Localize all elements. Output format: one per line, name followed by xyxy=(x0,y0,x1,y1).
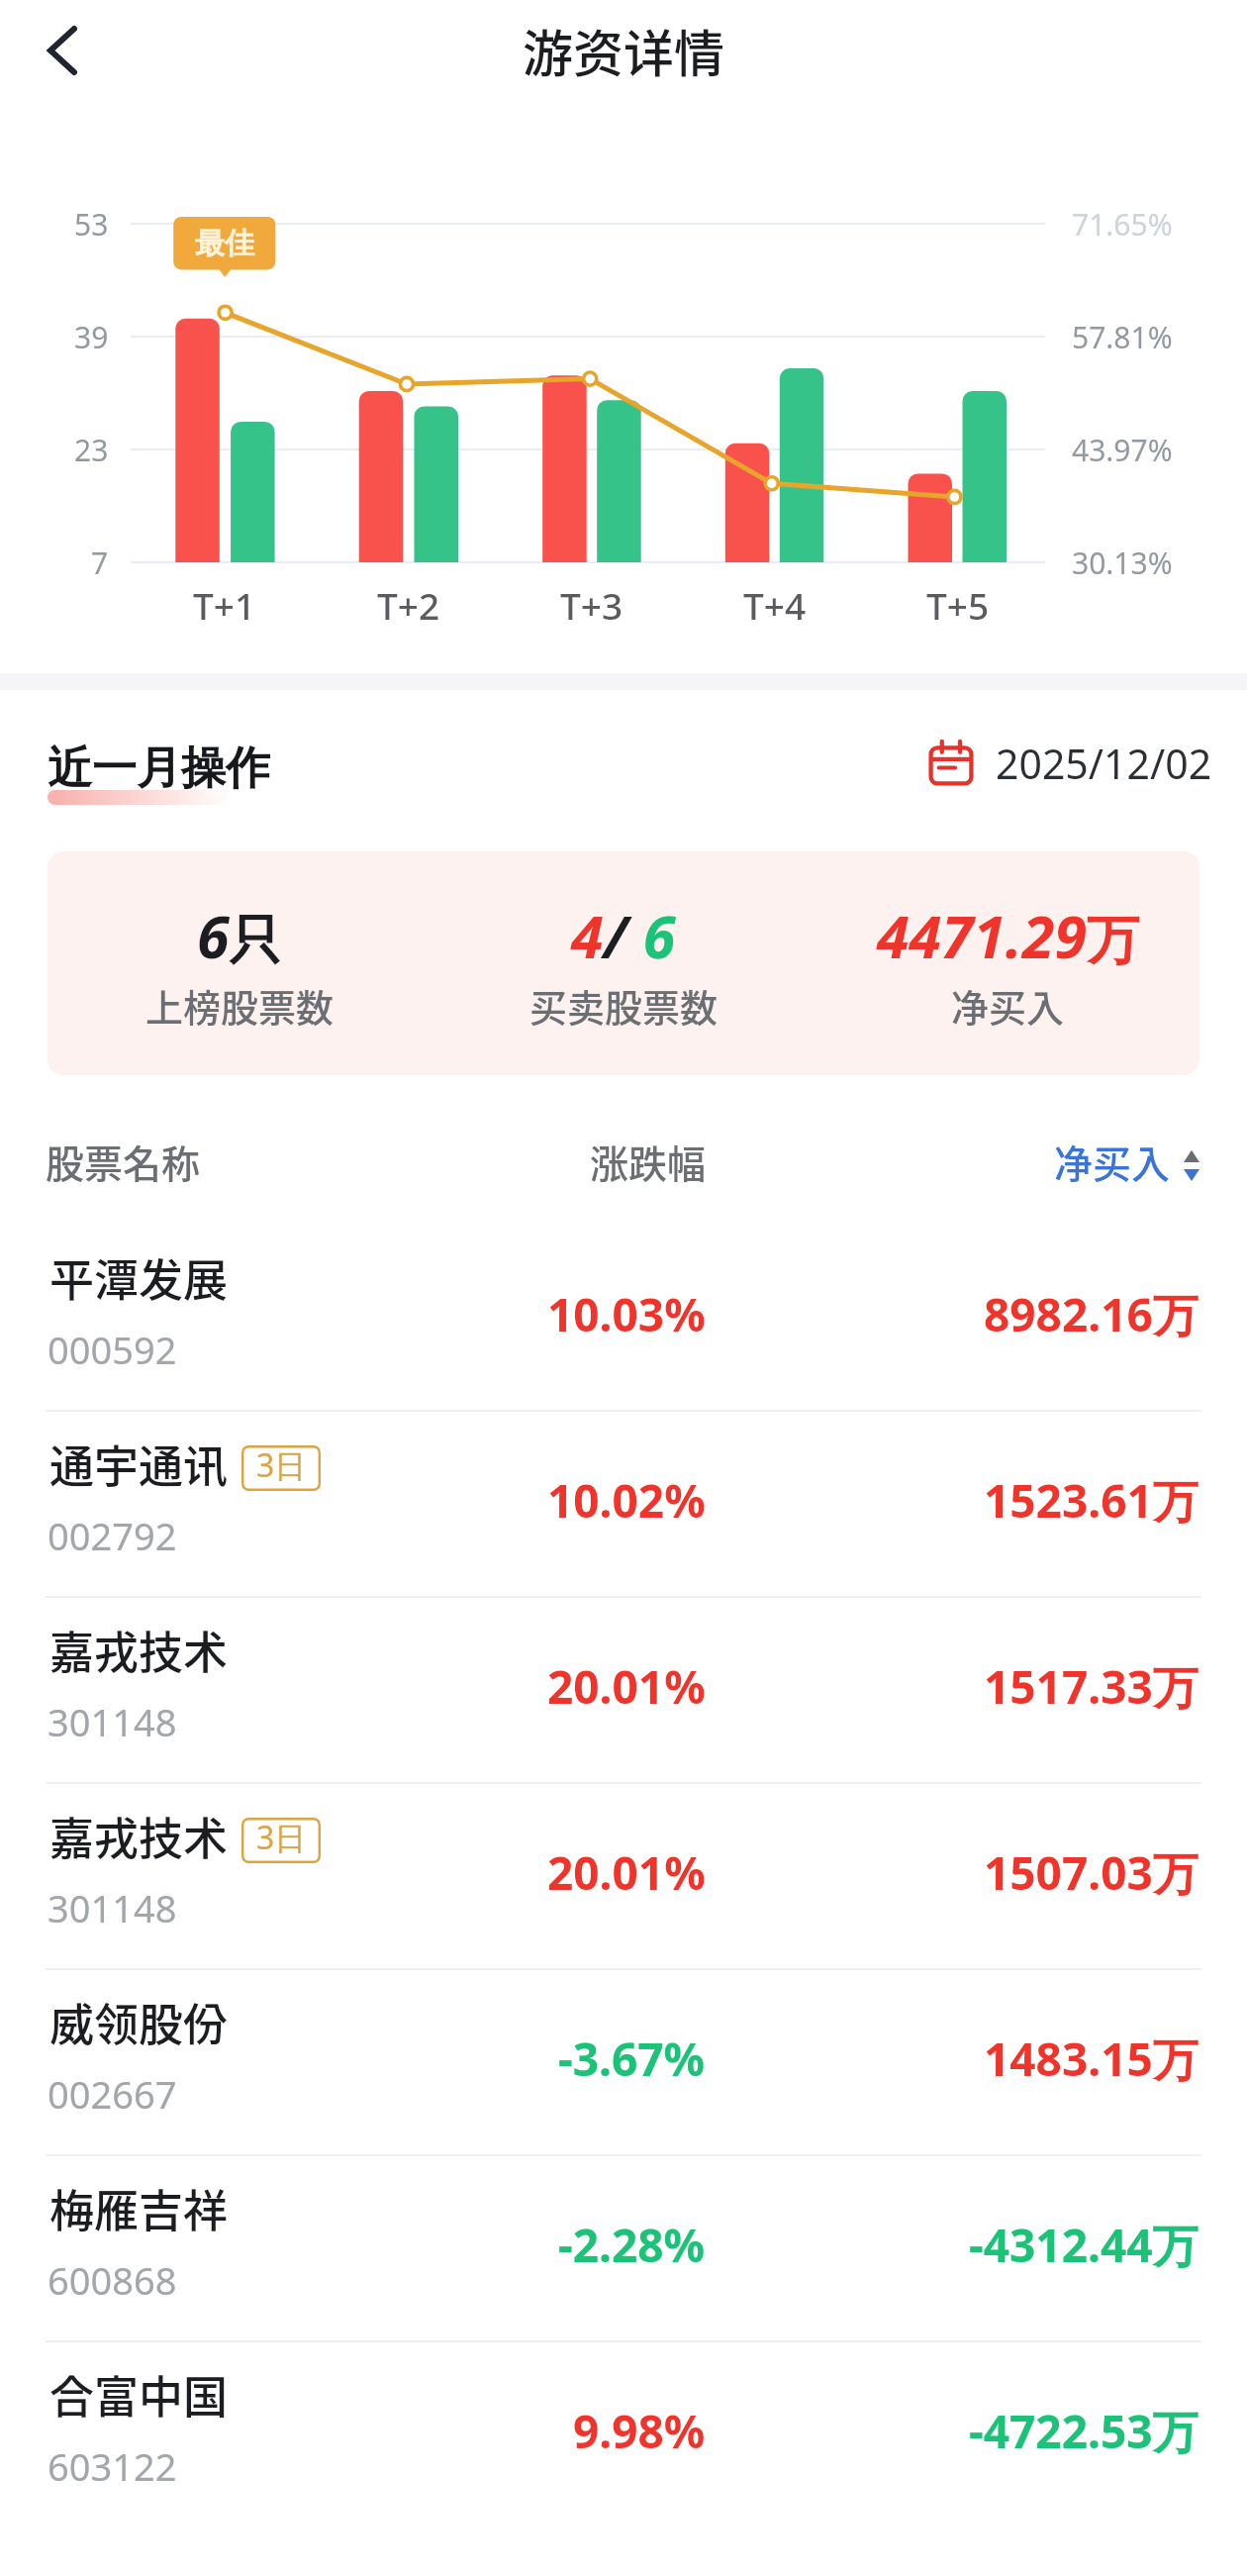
staticText: 通宇通讯 xyxy=(49,1432,229,1496)
button[interactable]: 平潭发展 xyxy=(0,1224,1247,1410)
button[interactable]: 威领股份 xyxy=(0,1968,1247,2154)
button[interactable]: 嘉戎技术 xyxy=(0,1782,1247,1968)
staticText: 威领股份 xyxy=(49,1990,229,2054)
staticText: 002792 xyxy=(48,1510,177,1561)
staticText: 603122 xyxy=(48,2440,177,2492)
staticText: 43.97% xyxy=(1072,430,1173,470)
staticText: T+2 xyxy=(377,580,440,630)
staticText: 净买入 xyxy=(951,978,1065,1033)
staticText: 39 xyxy=(74,317,109,357)
staticText: 57.81% xyxy=(1072,317,1173,357)
staticText: -4722.53万 xyxy=(969,2400,1199,2462)
staticText: 嘉戎技术 xyxy=(49,1618,229,1682)
button[interactable]: 净买入 xyxy=(930,1129,1201,1194)
staticText: 最佳 xyxy=(195,225,254,262)
staticText: 4471.29万 xyxy=(877,896,1139,975)
staticText: 嘉戎技术 xyxy=(49,1804,229,1868)
button[interactable]: 通宇通讯 xyxy=(0,1410,1247,1596)
staticText: 股票名称 xyxy=(46,1134,201,1189)
staticText: 近一月操作 xyxy=(48,741,270,794)
staticText: T+1 xyxy=(193,580,256,630)
button[interactable]: Back xyxy=(30,18,95,83)
staticText: 10.03% xyxy=(547,1283,706,1345)
staticText: 23 xyxy=(74,430,109,470)
staticText: 7 xyxy=(91,543,109,583)
button[interactable]: 2025/12/02 xyxy=(920,735,1212,792)
staticText: 买卖股票数 xyxy=(529,978,719,1033)
staticText: 上榜股票数 xyxy=(145,978,335,1033)
staticText: 301148 xyxy=(48,1882,177,1933)
staticText: 6只 xyxy=(197,896,282,975)
staticText: 20.01% xyxy=(547,1655,706,1718)
button[interactable]: 梅雁吉祥 xyxy=(0,2154,1247,2340)
staticText: 1507.03万 xyxy=(984,1841,1199,1904)
staticText: 53 xyxy=(74,204,109,245)
staticText: 8982.16万 xyxy=(984,1283,1199,1345)
staticText: 71.65% xyxy=(1072,204,1173,245)
staticText: -3.67% xyxy=(558,2028,706,2090)
staticText: 20.01% xyxy=(547,1841,706,1904)
staticText: 30.13% xyxy=(1072,543,1173,583)
staticText: 1523.61万 xyxy=(984,1469,1199,1532)
staticText: 合富中国 xyxy=(49,2362,229,2427)
staticText: 600868 xyxy=(48,2254,177,2306)
staticText: 4/ 6 xyxy=(571,896,676,975)
staticText: 净买入 xyxy=(1054,1134,1171,1189)
staticText: 2025/12/02 xyxy=(996,736,1212,791)
staticText: 1483.15万 xyxy=(984,2028,1199,2090)
staticText: -4312.44万 xyxy=(969,2214,1199,2276)
staticText: 10.02% xyxy=(547,1469,706,1532)
staticText: 3日 xyxy=(256,1443,307,1487)
staticText: 涨跌幅 xyxy=(590,1134,707,1189)
staticText: -2.28% xyxy=(558,2214,706,2276)
button[interactable]: 合富中国 xyxy=(0,2340,1247,2526)
staticText: 9.98% xyxy=(573,2400,706,2462)
staticText: 平潭发展 xyxy=(49,1245,229,1310)
button[interactable]: 嘉戎技术 xyxy=(0,1596,1247,1782)
staticText: T+3 xyxy=(560,580,623,630)
staticText: 000592 xyxy=(48,1324,177,1375)
staticText: T+4 xyxy=(743,580,807,630)
staticText: 游资详情 xyxy=(523,14,725,81)
staticText: 301148 xyxy=(48,1696,177,1747)
staticText: T+5 xyxy=(926,580,990,630)
staticText: 1517.33万 xyxy=(984,1655,1199,1718)
staticText: 梅雁吉祥 xyxy=(49,2176,229,2240)
staticText: 3日 xyxy=(256,1816,307,1859)
staticText: 002667 xyxy=(48,2068,177,2120)
